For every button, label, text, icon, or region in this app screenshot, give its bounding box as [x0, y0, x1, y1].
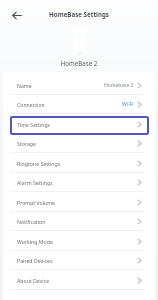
- button[interactable]: Back: [7, 6, 26, 25]
- button[interactable]: Alarm Settings: [0, 172, 158, 192]
- button[interactable]: Storage: [0, 133, 158, 153]
- button[interactable]: Paired Devices: [0, 250, 158, 270]
- staticText: Paired Devices: [17, 257, 53, 264]
- button[interactable]: About Device: [0, 270, 158, 290]
- staticText: Storage: [17, 140, 36, 147]
- staticText: HomeBase 2: [0, 59, 158, 67]
- staticText: Prompt Volume: [17, 199, 56, 206]
- staticText: Name: [17, 82, 32, 89]
- staticText: Wi-Fi: [122, 101, 134, 108]
- button[interactable]: Connection: [0, 94, 158, 114]
- button[interactable]: Working Mode: [0, 231, 158, 251]
- staticText: Homebase 2: [104, 82, 134, 89]
- staticText: Connection: [17, 101, 45, 108]
- button[interactable]: Prompt Volume: [0, 192, 158, 212]
- staticText: Alarm Settings: [17, 179, 53, 186]
- staticText: Working Mode: [17, 238, 53, 245]
- staticText: About Device: [17, 277, 50, 284]
- staticText: Time Settings: [17, 121, 51, 128]
- staticText: HomeBase Settings: [0, 10, 158, 18]
- button[interactable]: Notification: [0, 211, 158, 231]
- staticText: Notification: [17, 218, 46, 225]
- button[interactable]: Time Settings: [0, 114, 158, 134]
- button[interactable]: Name: [0, 75, 158, 95]
- button[interactable]: Ringtone Settings: [0, 153, 158, 173]
- staticText: Ringtone Settings: [17, 160, 61, 167]
